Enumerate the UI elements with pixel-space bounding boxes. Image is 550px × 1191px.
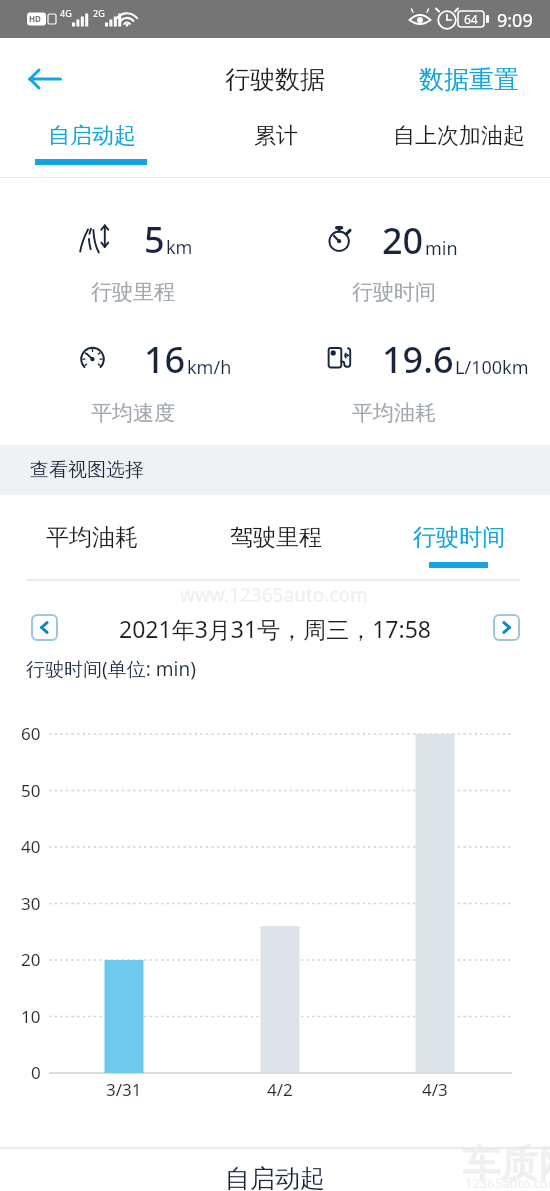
staticText: 行驶时间(单位: min) [26,656,196,682]
staticText: 64 [464,11,478,27]
staticText: 3/31 [106,1078,142,1101]
staticText: 4G [60,7,72,19]
staticText: 2G [93,7,105,19]
button[interactable]: 自上次加油起 [367,113,550,158]
staticText: 2021年3月31号，周三，17:58 [0,613,550,644]
staticText: km [166,235,193,260]
button[interactable]: 行驶时间 [367,498,550,576]
staticText: 驾驶里程 [230,523,322,552]
staticText: 30 [21,892,41,915]
staticText: 40 [21,835,41,858]
staticText: 60 [21,722,41,745]
staticText: 0 [31,1061,41,1084]
staticText: 50 [21,779,41,802]
staticText: 9:09 [497,8,533,33]
staticText: 自启动起 [225,1163,325,1191]
button[interactable]: 自启动起 [0,113,184,158]
button[interactable]: 驾驶里程 [184,498,367,576]
staticText: 19.6 [382,335,454,384]
staticText: L/100km [455,355,529,380]
staticText: 16 [144,335,186,384]
staticText: 自启动起 [48,122,136,150]
staticText: 平均油耗 [46,523,138,552]
staticText: HD [29,13,41,24]
staticText: 查看视图选择 [30,458,144,482]
staticText: 4/2 [267,1078,293,1101]
button[interactable]: Next [493,614,520,641]
staticText: www.12365auto.com [180,582,368,608]
button[interactable]: 数据重置 [419,64,519,95]
staticText: km/h [187,355,232,380]
staticText: 行驶时间 [352,279,436,305]
staticText: 数据重置 [419,64,519,95]
staticText: 自上次加油起 [393,122,525,150]
button[interactable]: Back [18,38,72,120]
staticText: 行驶数据 [225,64,325,95]
staticText: 20 [21,948,41,971]
staticText: 行驶里程 [91,279,175,305]
staticText: 平均速度 [91,400,175,426]
button[interactable]: 平均油耗 [0,498,184,576]
staticText: 累计 [254,122,298,150]
staticText: 4/3 [422,1078,448,1101]
button[interactable]: 累计 [184,113,367,158]
button[interactable]: 自启动起 [0,1149,550,1191]
staticText: 12365auto.com [465,1174,550,1191]
staticText: 20 [382,216,424,265]
button[interactable]: Previous [31,614,58,641]
staticText: 车质网 [462,1140,550,1188]
staticText: min [425,236,458,261]
staticText: 10 [21,1005,41,1028]
staticText: 行驶时间 [413,523,505,552]
staticText: 平均油耗 [352,400,436,426]
staticText: 5 [144,215,165,264]
